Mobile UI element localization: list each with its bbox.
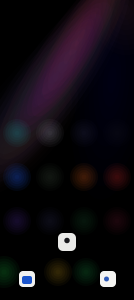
button[interactable]: Open app bbox=[19, 271, 35, 287]
button[interactable]: Camera bbox=[58, 233, 76, 251]
button[interactable]: Open app bbox=[100, 271, 116, 287]
